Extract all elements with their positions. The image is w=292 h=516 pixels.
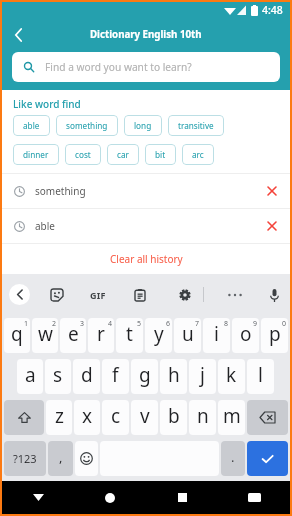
staticText: 2 — [52, 319, 57, 329]
button[interactable]: v — [131, 400, 158, 435]
button[interactable]: Recents — [146, 481, 218, 514]
button[interactable]: long — [124, 115, 162, 136]
button[interactable]: cost — [65, 144, 101, 165]
button[interactable]: transitive — [168, 115, 224, 136]
button[interactable]: Clear all history — [2, 244, 290, 273]
button[interactable]: car — [107, 144, 139, 165]
staticText: bit — [155, 149, 166, 160]
staticText: y — [154, 321, 164, 347]
staticText: 7 — [195, 319, 200, 329]
staticText: Clear all history — [110, 252, 183, 266]
button[interactable]: l — [247, 359, 274, 394]
staticText: r — [97, 321, 105, 347]
staticText: n — [197, 403, 209, 429]
staticText: something — [66, 120, 108, 131]
button[interactable]: a — [17, 359, 43, 394]
button[interactable]: Comma — [48, 441, 73, 476]
staticText: 4:48 — [262, 3, 283, 17]
button[interactable]: Stickers — [44, 282, 70, 308]
button[interactable]: able — [2, 209, 290, 243]
button[interactable]: p — [261, 318, 288, 353]
button[interactable]: u — [174, 318, 201, 353]
staticText: car — [117, 149, 129, 160]
button[interactable]: r — [88, 318, 114, 353]
staticText: Like word find — [13, 97, 81, 111]
staticText: o — [240, 321, 252, 347]
button[interactable]: x — [74, 400, 100, 435]
button[interactable]: something — [56, 115, 118, 136]
button[interactable]: Backspace — [247, 400, 288, 435]
button[interactable]: Remove something — [257, 176, 287, 206]
button[interactable]: k — [218, 359, 245, 394]
staticText: . — [231, 448, 235, 466]
button[interactable]: Voice input — [261, 282, 287, 308]
button[interactable]: i — [203, 318, 230, 353]
button[interactable]: Settings — [172, 282, 198, 308]
button[interactable]: Emoji — [75, 441, 98, 476]
button[interactable]: dinner — [13, 144, 59, 165]
button[interactable]: Switch keyboard — [218, 481, 290, 514]
staticText: a — [25, 362, 36, 388]
staticText: i — [214, 321, 219, 347]
staticText: ?123 — [13, 451, 37, 466]
staticText: 0 — [282, 319, 287, 329]
button[interactable]: arc — [182, 144, 214, 165]
staticText: h — [168, 362, 180, 388]
button[interactable]: o — [232, 318, 259, 353]
staticText: able — [23, 120, 40, 131]
button[interactable]: e — [60, 318, 86, 353]
button[interactable]: Enter — [247, 441, 288, 476]
button[interactable]: bit — [145, 144, 176, 165]
staticText: 5 — [137, 319, 142, 329]
staticText: 6 — [166, 319, 171, 329]
staticText: b — [168, 403, 180, 429]
staticText: m — [223, 403, 241, 429]
staticText: d — [81, 362, 93, 388]
staticText: dinner — [23, 149, 49, 160]
button[interactable]: able — [13, 115, 50, 136]
button[interactable]: Back — [2, 481, 74, 514]
button[interactable]: Symbols — [4, 441, 46, 476]
button[interactable]: j — [189, 359, 216, 394]
button[interactable]: b — [160, 400, 187, 435]
button[interactable]: z — [46, 400, 72, 435]
staticText: g — [139, 362, 151, 388]
staticText: t — [126, 321, 133, 347]
staticText: l — [258, 362, 263, 388]
staticText: v — [140, 403, 150, 429]
staticText: transitive — [178, 120, 214, 131]
button[interactable]: t — [116, 318, 143, 353]
button[interactable]: f — [102, 359, 129, 394]
staticText: something — [35, 184, 86, 198]
button[interactable]: Clipboard — [127, 282, 153, 308]
staticText: w — [38, 321, 53, 347]
button[interactable]: Shift — [4, 400, 44, 435]
button[interactable]: Back — [2, 20, 34, 50]
button[interactable]: Find a word you want to learn? — [12, 52, 280, 82]
button[interactable]: s — [45, 359, 71, 394]
button[interactable]: More options — [222, 282, 248, 308]
staticText: 4 — [108, 319, 113, 329]
button[interactable]: h — [160, 359, 187, 394]
button[interactable]: n — [189, 400, 216, 435]
button[interactable]: Remove able — [257, 211, 287, 241]
staticText: , — [59, 448, 63, 466]
button[interactable]: Home — [74, 481, 146, 514]
button[interactable]: Period — [221, 441, 245, 476]
button[interactable]: d — [73, 359, 100, 394]
staticText: arc — [192, 149, 204, 160]
button[interactable]: w — [32, 318, 58, 353]
button[interactable]: m — [218, 400, 245, 435]
button[interactable]: c — [102, 400, 129, 435]
staticText: e — [68, 321, 79, 347]
staticText: p — [269, 321, 281, 347]
button[interactable]: y — [145, 318, 172, 353]
button[interactable]: g — [131, 359, 158, 394]
button[interactable]: something — [2, 174, 290, 208]
button[interactable]: Close toolbar — [9, 284, 30, 305]
staticText: long — [134, 120, 152, 131]
button[interactable]: GIF — [85, 282, 111, 308]
staticText: j — [200, 362, 205, 388]
button[interactable]: q — [4, 318, 30, 353]
